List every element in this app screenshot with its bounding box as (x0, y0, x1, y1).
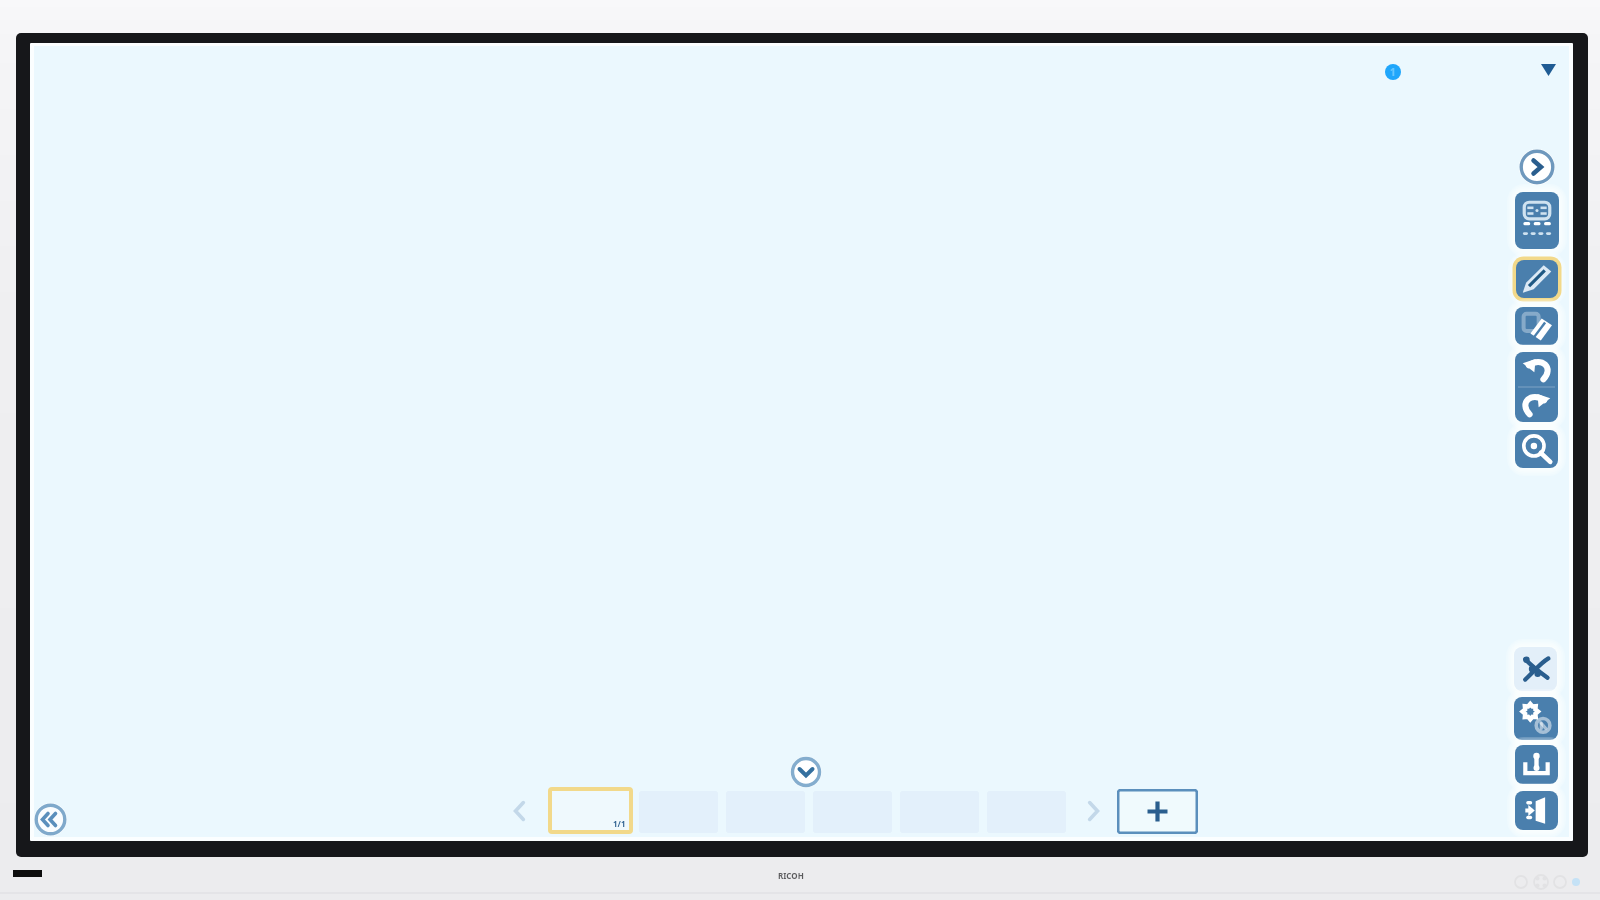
button[interactable]: Pen (1516, 260, 1558, 298)
button[interactable]: Previous page (506, 797, 534, 825)
button[interactable]: Expand menu (1541, 64, 1556, 76)
button[interactable]: Expand toolbar (1518, 148, 1556, 186)
button[interactable]: Settings (1514, 697, 1558, 740)
staticText: 1/1 (613, 818, 626, 829)
button[interactable]: Notification (1385, 64, 1401, 80)
button[interactable]: Zoom (1515, 430, 1558, 468)
button[interactable]: Connect (1514, 647, 1557, 691)
button[interactable]: Show pages (789, 755, 823, 789)
button[interactable]: Undo (1515, 352, 1558, 387)
button[interactable]: Collapse toolbar (34, 803, 67, 836)
staticText: 1 (1390, 65, 1396, 79)
button[interactable]: Redo (1515, 387, 1558, 422)
button[interactable]: Keyboard (1515, 192, 1559, 249)
button[interactable]: Save (1515, 745, 1558, 784)
button[interactable]: Next page (1079, 797, 1107, 825)
button[interactable]: Page 1 (552, 791, 629, 830)
button[interactable]: Exit (1515, 791, 1558, 830)
button[interactable]: Eraser (1515, 307, 1558, 345)
staticText: RICOH (778, 870, 804, 881)
button[interactable]: Add page (1117, 789, 1198, 834)
